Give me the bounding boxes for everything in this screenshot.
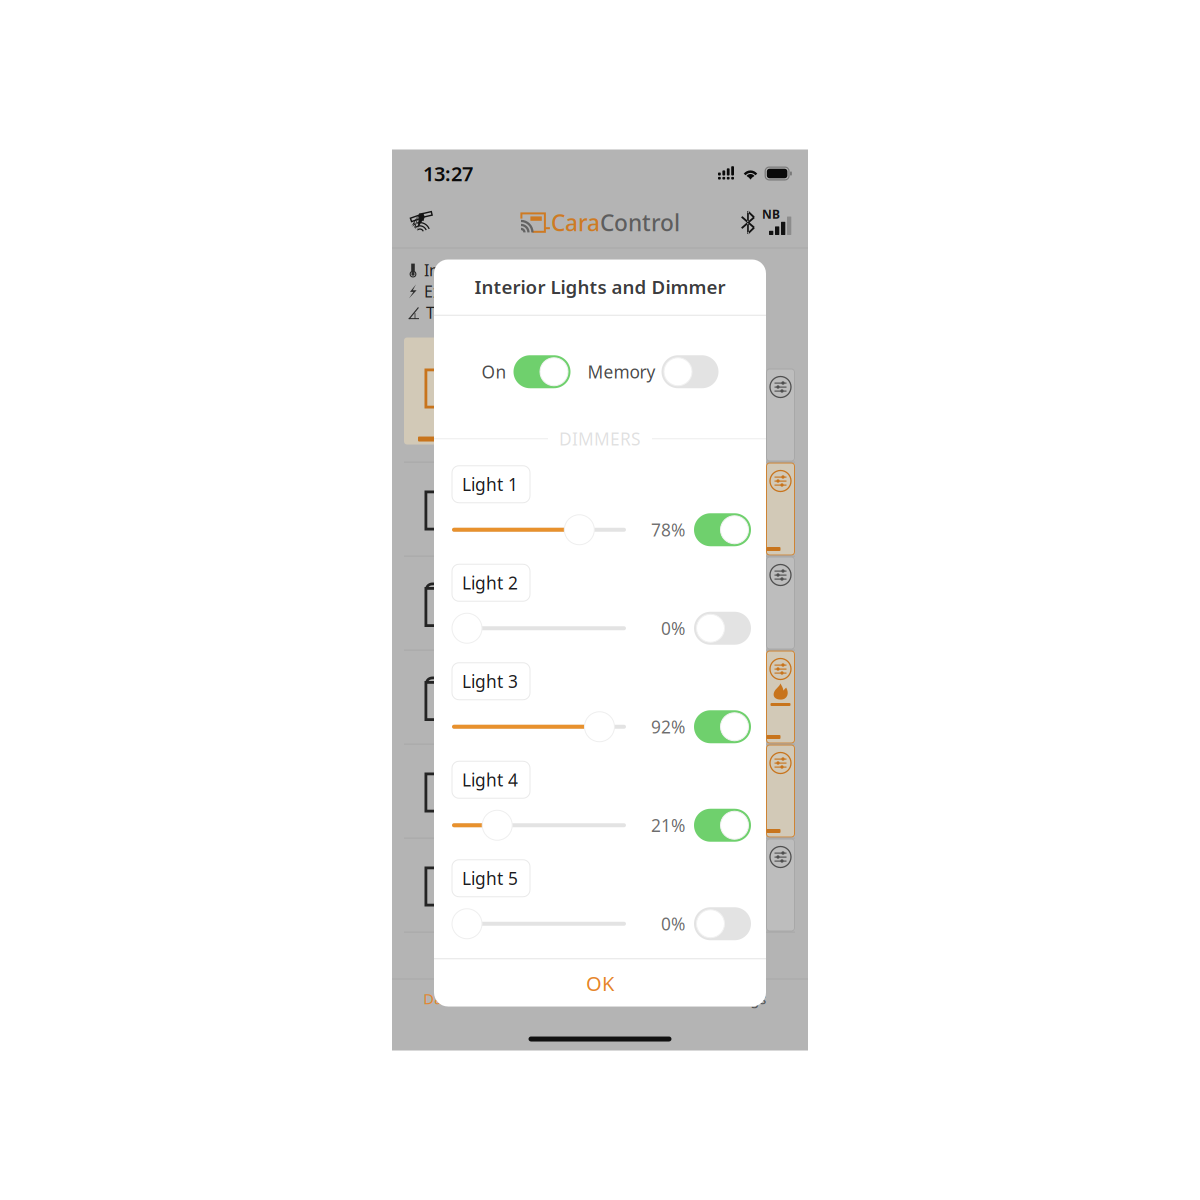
staticText: Light 4 <box>462 768 518 791</box>
staticText: 0% <box>661 912 685 935</box>
button[interactable]: Dashboard <box>392 979 531 1017</box>
staticText: Interior 21.5 °C <box>424 259 538 281</box>
button[interactable]: Light 3 power <box>694 710 751 743</box>
staticText: NB <box>762 206 780 222</box>
staticText: Interior Lights and Dimmer <box>474 274 725 299</box>
staticText: Memory <box>587 360 655 383</box>
button[interactable]: Light 3 <box>452 663 530 700</box>
staticText: Light 3 <box>462 670 518 693</box>
staticText: Cara <box>551 207 600 237</box>
button[interactable]: Light 5 <box>452 860 530 897</box>
staticText: 78% <box>651 518 685 541</box>
staticText: 0% <box>661 617 685 640</box>
staticText: Control <box>600 207 680 237</box>
button[interactable]: OK <box>434 959 766 1007</box>
button[interactable]: Light 4 power <box>694 809 751 842</box>
button[interactable]: Mobile signal <box>762 207 794 237</box>
button[interactable]: Memory <box>661 355 718 388</box>
button[interactable]: Light 1 power <box>694 513 751 546</box>
staticText: Light 5 <box>462 867 518 890</box>
button[interactable]: Menu <box>531 979 669 1017</box>
staticText: 21% <box>651 814 685 837</box>
staticText: Tilt 0.3° <box>426 302 482 323</box>
staticText: Dashboard <box>423 989 499 1008</box>
button[interactable]: Light 5 power <box>694 907 751 940</box>
staticText: 92% <box>651 715 685 738</box>
button[interactable]: Settings <box>669 979 808 1017</box>
button[interactable]: Light 1 <box>452 466 530 503</box>
button[interactable]: Light 2 power <box>694 612 751 645</box>
staticText: OK <box>586 970 614 997</box>
button[interactable]: Bluetooth <box>738 205 758 239</box>
button[interactable]: Light 4 <box>452 761 530 798</box>
staticText: Settings <box>711 989 766 1008</box>
staticText: Light 1 <box>462 473 518 496</box>
staticText: DIMMERS <box>559 427 641 450</box>
button[interactable]: Light 2 <box>452 564 530 601</box>
staticText: Menu <box>580 989 619 1008</box>
staticText: External 13.2 V <box>424 281 535 302</box>
staticText: Light 2 <box>462 571 518 594</box>
button[interactable]: Lights on <box>513 355 570 388</box>
button[interactable]: GPS status <box>405 205 437 239</box>
staticText: 13:27 <box>423 160 473 187</box>
staticText: On <box>481 360 506 383</box>
